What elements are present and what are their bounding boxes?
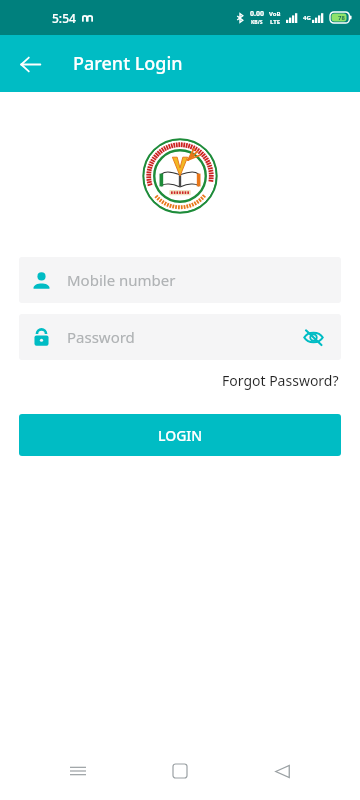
staticText: Mobile number — [67, 270, 176, 290]
button[interactable]: Back — [10, 44, 50, 84]
staticText: Password — [67, 327, 135, 347]
button[interactable]: Back — [258, 747, 306, 795]
staticText: 5:54 — [52, 10, 76, 26]
staticText: 4G — [303, 14, 311, 22]
staticText: VoB — [269, 10, 281, 18]
button[interactable]: Home — [156, 747, 204, 795]
staticText: 0.00 — [250, 9, 264, 19]
button[interactable]: Password — [19, 314, 341, 360]
button[interactable]: LOGIN — [19, 414, 341, 456]
button[interactable]: Show password — [298, 322, 328, 352]
staticText: LOGIN — [158, 426, 203, 445]
staticText: Forgot Password? — [222, 371, 339, 390]
staticText: 78 — [338, 14, 345, 22]
staticText: LTE — [270, 18, 281, 26]
staticText: Parent Login — [73, 51, 183, 76]
button[interactable]: Recent apps — [54, 747, 102, 795]
staticText: KB/S — [251, 19, 263, 26]
button[interactable]: Mobile number — [19, 257, 341, 303]
button[interactable]: Forgot Password? — [220, 369, 341, 392]
